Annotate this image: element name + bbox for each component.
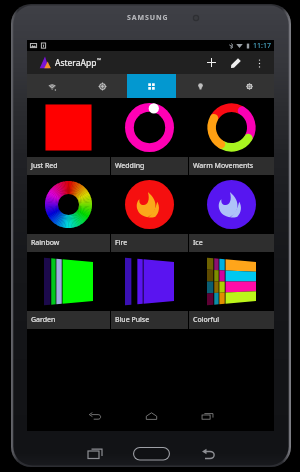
button[interactable]: Just Red	[27, 98, 110, 175]
button[interactable]: Home	[136, 401, 166, 431]
staticText: AsteraApp	[55, 57, 97, 69]
button[interactable]: Scenes	[127, 74, 176, 98]
staticText: Warm Movements	[193, 161, 254, 171]
button[interactable]: Wedding	[111, 98, 188, 175]
button[interactable]: Colorful	[189, 252, 274, 329]
button[interactable]: Settings	[225, 74, 274, 98]
button[interactable]: Blue Pulse	[111, 252, 188, 329]
staticText: Rainbow	[31, 238, 60, 248]
button[interactable]: Back	[80, 401, 110, 431]
button[interactable]: Recents	[192, 401, 222, 431]
button[interactable]: Locate	[77, 74, 127, 98]
button[interactable]: Add	[200, 51, 223, 74]
staticText: Colorful	[193, 315, 220, 325]
staticText: SAMSUNG	[127, 13, 169, 23]
staticText: Blue Pulse	[115, 315, 150, 325]
button[interactable]: Garden	[27, 252, 110, 329]
staticText: ™	[97, 57, 101, 64]
button[interactable]: More options	[249, 53, 269, 73]
button[interactable]: Fire	[111, 175, 188, 252]
staticText: 11:17	[253, 41, 271, 51]
button[interactable]: Lights	[176, 74, 225, 98]
button[interactable]: Ice	[189, 175, 274, 252]
staticText: Ice	[193, 238, 203, 248]
staticText: Fire	[115, 238, 128, 248]
button[interactable]: Network	[27, 74, 77, 98]
button[interactable]: Rainbow	[27, 175, 110, 252]
staticText: Garden	[31, 315, 56, 325]
staticText: Wedding	[115, 161, 145, 171]
staticText: Just Red	[31, 161, 58, 171]
button[interactable]: Edit	[224, 51, 247, 74]
button[interactable]: Warm Movements	[189, 98, 274, 175]
